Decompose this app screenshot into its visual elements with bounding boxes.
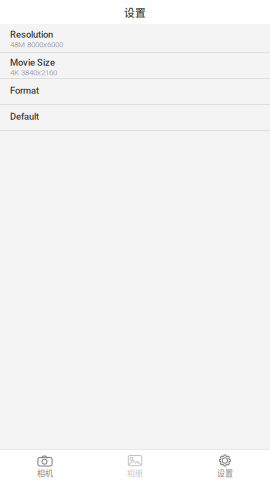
staticText: Format [10, 85, 39, 96]
button[interactable]: Default [0, 105, 270, 130]
staticText: Movie Size [10, 57, 55, 68]
button[interactable]: 相机 [0, 450, 90, 480]
staticText: Resolution [10, 29, 53, 40]
button[interactable]: 相册 [90, 450, 180, 480]
staticText: Default [10, 111, 39, 122]
staticText: 相册 [127, 467, 143, 479]
button[interactable]: Resolution [0, 24, 270, 52]
staticText: 相机 [37, 467, 53, 479]
staticText: 48M 8000x6000 [10, 40, 63, 49]
button[interactable]: Movie Size [0, 53, 270, 78]
staticText: 4K 3840x2160 [10, 68, 57, 77]
staticText: 设置 [124, 4, 146, 20]
button[interactable]: 设置 [180, 450, 270, 480]
button[interactable]: Format [0, 79, 270, 104]
staticText: 设置 [217, 467, 233, 479]
